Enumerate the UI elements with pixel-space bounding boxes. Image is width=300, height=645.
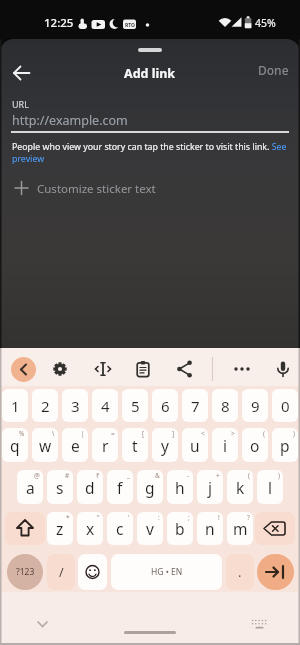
button[interactable]: v [137, 512, 163, 545]
staticText: ? [247, 513, 250, 522]
staticText: ] [172, 429, 175, 438]
button[interactable] [131, 357, 155, 381]
button[interactable]: Done [252, 59, 294, 81]
staticText: p [280, 435, 290, 456]
button[interactable]: l [257, 470, 283, 504]
button[interactable] [5, 512, 45, 545]
staticText: _ [127, 471, 130, 480]
staticText: f [117, 477, 123, 498]
staticText: > [231, 429, 235, 438]
staticText: 1 [11, 396, 20, 416]
button[interactable]: 2 [32, 389, 58, 422]
button[interactable]: 0 [272, 389, 298, 422]
button[interactable]: Customize sticker text [0, 177, 300, 203]
button[interactable]: 7 [182, 389, 208, 422]
button[interactable]: q [2, 428, 28, 462]
button[interactable]: s [47, 470, 73, 504]
staticText: < [201, 429, 205, 438]
button[interactable] [244, 610, 274, 638]
button[interactable] [6, 58, 36, 88]
button[interactable]: r [92, 428, 118, 462]
staticText: ) [278, 471, 280, 480]
staticText: g [145, 477, 155, 498]
button[interactable]: k [227, 470, 253, 504]
staticText: q [10, 435, 20, 456]
staticText: ) [293, 429, 295, 438]
staticText: 9 [251, 396, 260, 416]
button[interactable]: w [32, 428, 58, 462]
staticText: 12:25 [44, 15, 74, 31]
staticText: n [205, 518, 215, 539]
button[interactable] [78, 554, 107, 590]
staticText: ( [248, 471, 250, 480]
button[interactable]: u [182, 428, 208, 462]
button[interactable]: ?123 [7, 554, 43, 590]
staticText: y [161, 435, 169, 456]
button[interactable]: x [77, 512, 103, 545]
staticText: 45% [255, 16, 276, 30]
button[interactable]: n [197, 512, 223, 545]
button[interactable]: i [212, 428, 238, 462]
button[interactable]: . [226, 554, 254, 590]
staticText: 8 [221, 396, 230, 416]
button[interactable]: a [17, 470, 43, 504]
button[interactable]: y [152, 428, 178, 462]
staticText: RTO [125, 22, 136, 29]
button[interactable]: t [122, 428, 148, 462]
button[interactable] [28, 610, 58, 638]
button[interactable]: / [47, 554, 75, 590]
button[interactable]: d [77, 470, 103, 504]
staticText: [ [142, 429, 145, 438]
staticText: c [116, 518, 124, 539]
staticText: o [250, 435, 260, 456]
button[interactable]: 6 [152, 389, 178, 422]
button[interactable]: 9 [242, 389, 268, 422]
staticText: / [59, 564, 64, 581]
button[interactable]: 1 [2, 389, 28, 422]
button[interactable]: e [62, 428, 88, 462]
button[interactable]: z [47, 512, 73, 545]
staticText: . [238, 563, 242, 581]
staticText: 2 [41, 396, 50, 416]
button[interactable] [48, 357, 72, 381]
button[interactable]: j [197, 470, 223, 504]
button[interactable]: m [227, 512, 253, 545]
button[interactable]: 8 [212, 389, 238, 422]
staticText: URL [12, 98, 29, 110]
button[interactable] [91, 357, 115, 381]
button[interactable]: HG • EN [111, 554, 222, 590]
button[interactable]: preview [12, 153, 45, 165]
button[interactable] [230, 357, 254, 381]
staticText: j [208, 477, 212, 498]
staticText: v [146, 518, 154, 539]
button[interactable]: 5 [122, 389, 148, 422]
staticText: i [223, 435, 227, 456]
button[interactable]: g [137, 470, 163, 504]
staticText: preview [12, 153, 45, 165]
staticText: http://example.com [12, 112, 128, 129]
button[interactable] [173, 357, 197, 381]
button[interactable]: f [107, 470, 133, 504]
staticText: HG • EN [151, 566, 183, 578]
button[interactable]: c [107, 512, 133, 545]
staticText: Customize sticker text [37, 181, 156, 197]
button[interactable]: b [167, 512, 193, 545]
button[interactable]: 3 [62, 389, 88, 422]
staticText: z [56, 518, 64, 539]
button[interactable]: h [167, 470, 193, 504]
button[interactable] [255, 512, 295, 545]
button[interactable]: 4 [92, 389, 118, 422]
button[interactable] [271, 357, 295, 381]
button[interactable] [257, 554, 294, 590]
staticText: m [233, 518, 248, 539]
staticText: = [111, 429, 115, 438]
staticText: k [236, 477, 245, 498]
staticText: ; [188, 513, 190, 522]
staticText: t [132, 435, 138, 456]
staticText: @ [34, 471, 40, 480]
button[interactable]: p [272, 428, 298, 462]
button[interactable]: o [242, 428, 268, 462]
button[interactable] [11, 357, 36, 382]
button[interactable]: URL [0, 94, 300, 136]
staticText: & [155, 471, 160, 480]
